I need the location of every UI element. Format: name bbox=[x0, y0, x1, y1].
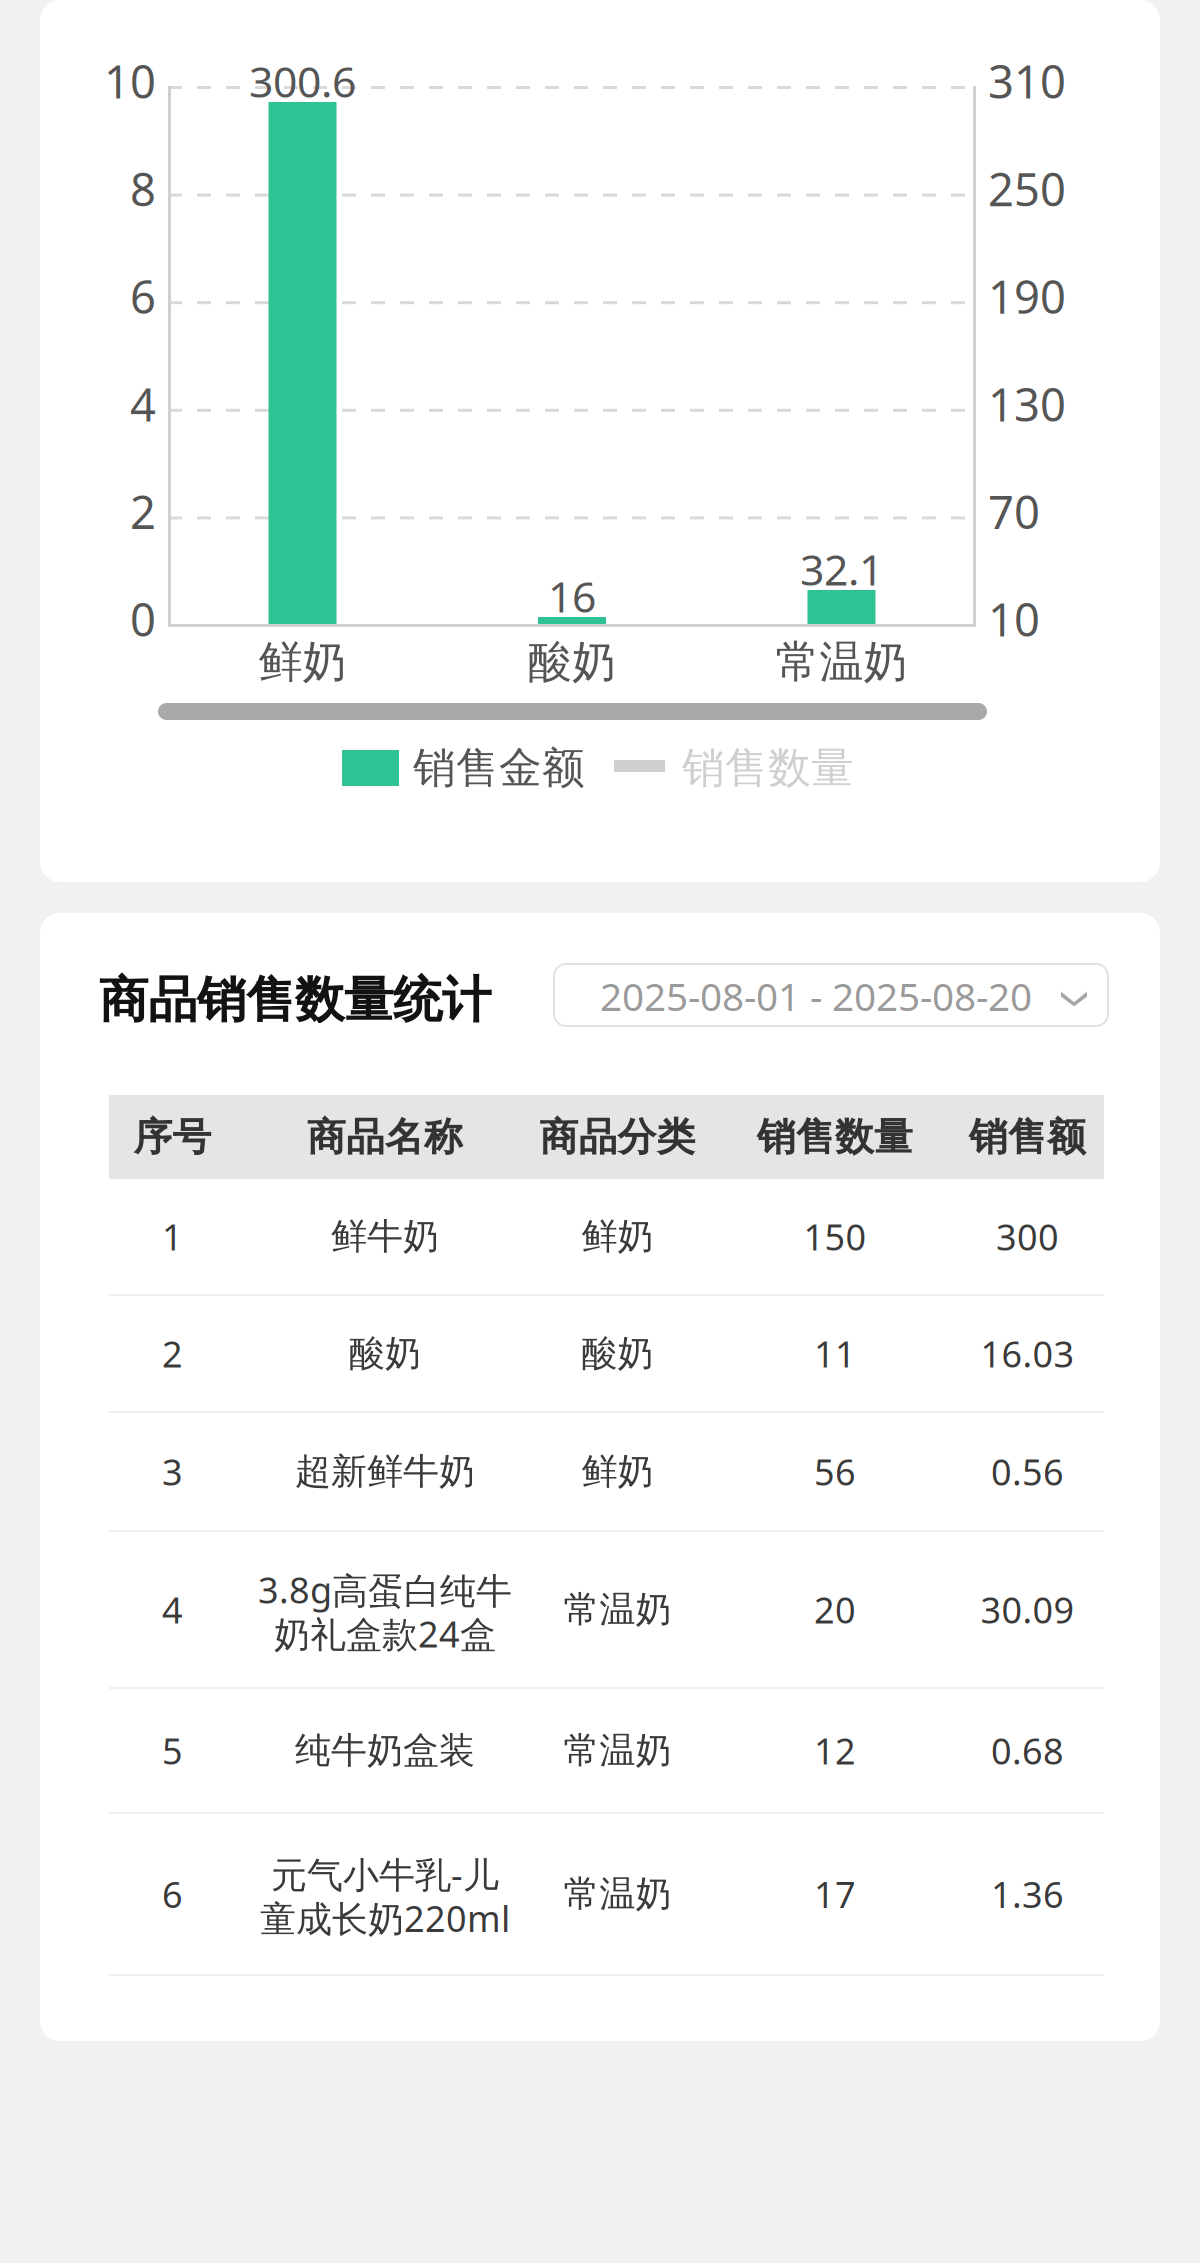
staticText: 常温奶 bbox=[775, 635, 907, 689]
staticText: 酸奶 bbox=[581, 1331, 653, 1376]
staticText: 150 bbox=[803, 1213, 866, 1260]
staticText: 鲜奶 bbox=[258, 635, 346, 689]
staticText: 310 bbox=[988, 51, 1066, 111]
staticText: 纯牛奶盒装 bbox=[295, 1728, 475, 1773]
staticText: 300 bbox=[996, 1213, 1059, 1260]
staticText: 32.1 bbox=[800, 541, 883, 597]
staticText: 11 bbox=[814, 1330, 856, 1377]
staticText: 12 bbox=[814, 1727, 856, 1774]
staticText: 酸奶 bbox=[349, 1331, 421, 1376]
staticText: 300.6 bbox=[249, 53, 356, 109]
staticText: 超新鲜牛奶 bbox=[295, 1449, 475, 1494]
staticText: 30.09 bbox=[980, 1586, 1074, 1633]
staticText: 销售数量 bbox=[757, 1113, 913, 1161]
staticText: 销售金额 bbox=[413, 742, 585, 794]
staticText: 70 bbox=[988, 481, 1040, 541]
staticText: 17 bbox=[814, 1870, 856, 1918]
staticText: 5 bbox=[162, 1727, 183, 1774]
staticText: 奶礼盒款24盒 bbox=[274, 1610, 496, 1657]
staticText: 4 bbox=[130, 374, 156, 434]
staticText: 2 bbox=[130, 481, 156, 541]
staticText: 6 bbox=[130, 266, 156, 326]
staticText: 1 bbox=[162, 1213, 183, 1260]
staticText: 常温奶 bbox=[563, 1872, 671, 1916]
staticText: 16.03 bbox=[980, 1330, 1074, 1377]
staticText: 鲜奶 bbox=[581, 1449, 653, 1494]
staticText: 8 bbox=[130, 158, 156, 219]
staticText: 2 bbox=[162, 1330, 183, 1377]
staticText: 190 bbox=[988, 266, 1066, 326]
staticText: 20 bbox=[814, 1586, 856, 1633]
staticText: 鲜奶 bbox=[581, 1214, 653, 1259]
staticText: 商品名称 bbox=[307, 1113, 463, 1161]
staticText: 3.8g高蛋白纯牛 bbox=[258, 1565, 512, 1613]
staticText: 商品销售数量统计 bbox=[99, 970, 491, 1030]
staticText: 序号 bbox=[133, 1113, 211, 1161]
staticText: 元气小牛乳-儿 bbox=[271, 1850, 499, 1898]
staticText: 56 bbox=[814, 1448, 856, 1495]
staticText: 2025-08-01 - 2025-08-20 bbox=[600, 970, 1032, 1022]
staticText: 酸奶 bbox=[528, 635, 616, 689]
staticText: 4 bbox=[162, 1586, 183, 1633]
staticText: 10 bbox=[988, 589, 1040, 649]
staticText: 常温奶 bbox=[563, 1728, 671, 1773]
staticText: 16 bbox=[548, 568, 596, 624]
staticText: 0.68 bbox=[991, 1727, 1064, 1774]
staticText: 6 bbox=[162, 1870, 183, 1918]
staticText: 童成长奶220ml bbox=[260, 1894, 510, 1942]
staticText: 10 bbox=[104, 51, 156, 111]
staticText: 250 bbox=[988, 158, 1066, 219]
staticText: 1.36 bbox=[991, 1870, 1064, 1918]
staticText: 0.56 bbox=[991, 1448, 1064, 1495]
staticText: 130 bbox=[988, 374, 1066, 434]
staticText: 3 bbox=[162, 1448, 183, 1495]
staticText: 销售数量 bbox=[682, 742, 854, 794]
staticText: 0 bbox=[130, 589, 156, 649]
staticText: 常温奶 bbox=[563, 1587, 671, 1632]
staticText: 销售额 bbox=[969, 1113, 1086, 1161]
button[interactable]: 2025-08-01 - 2025-08-20 bbox=[554, 964, 1108, 1026]
staticText: 鲜牛奶 bbox=[331, 1214, 439, 1259]
staticText: 商品分类 bbox=[539, 1113, 695, 1161]
